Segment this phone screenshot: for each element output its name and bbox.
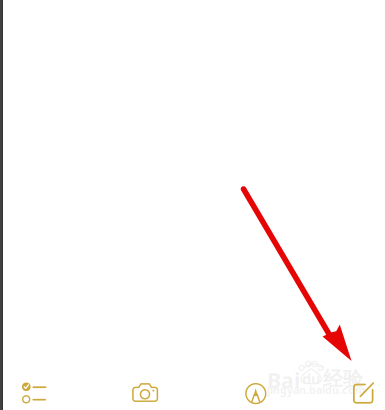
staticText: Bai	[267, 366, 300, 394]
staticText: du	[302, 369, 321, 388]
button[interactable]: Checklist	[22, 382, 46, 403]
button[interactable]: Compose	[353, 383, 374, 404]
button[interactable]: Camera	[132, 383, 159, 402]
staticText: 经验	[323, 367, 363, 391]
button[interactable]: Markup	[245, 383, 267, 405]
staticText: jingyan.baidu.com	[267, 383, 365, 397]
